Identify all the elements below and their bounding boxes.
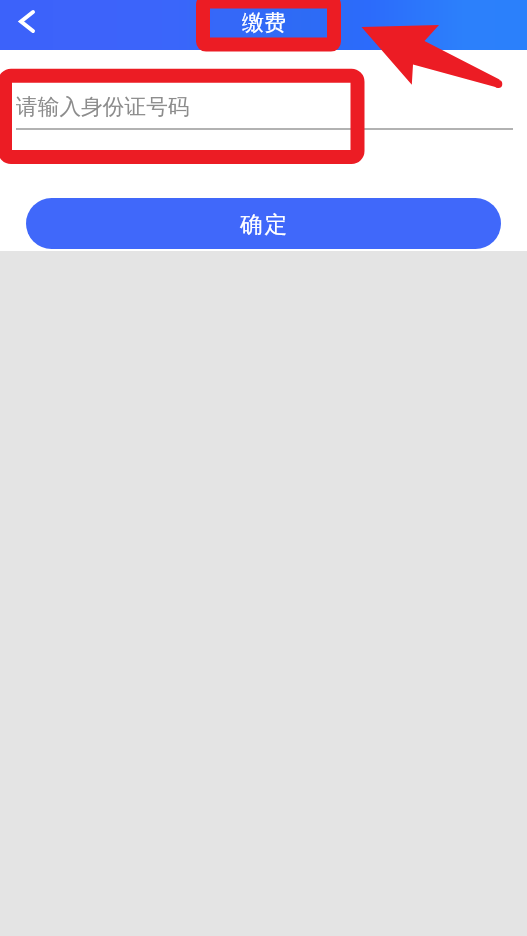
button[interactable]: 确定 bbox=[26, 198, 501, 249]
button[interactable]: 请输入身份证号码 bbox=[16, 70, 513, 129]
staticText: 确定 bbox=[239, 210, 288, 238]
staticText: 缴费 bbox=[242, 9, 286, 37]
staticText: 请输入身份证号码 bbox=[16, 93, 190, 120]
button[interactable]: Back bbox=[0, 0, 50, 50]
